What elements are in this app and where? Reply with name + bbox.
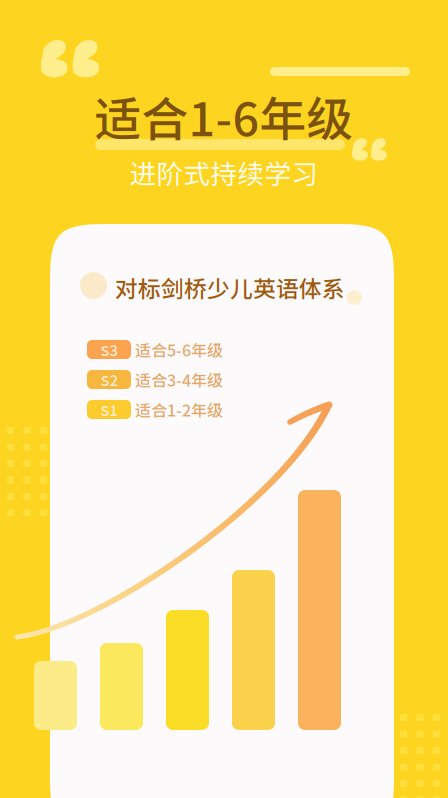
staticText: 适合1-6年级: [94, 82, 353, 150]
staticText: S1: [100, 399, 117, 420]
staticText: S3: [100, 339, 117, 360]
staticText: 进阶式持续学习: [129, 153, 318, 192]
staticText: S2: [100, 369, 117, 390]
staticText: 适合5-6年级: [135, 338, 223, 361]
staticText: 对标剑桥少儿英语体系: [115, 271, 345, 304]
staticText: 适合3-4年级: [135, 368, 223, 391]
staticText: 适合1-2年级: [135, 398, 223, 421]
